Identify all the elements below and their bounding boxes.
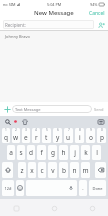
staticText: 8	[79, 128, 81, 132]
staticText: Send	[94, 107, 104, 112]
staticText: 7	[68, 128, 70, 132]
button[interactable]: Add attachment	[2, 104, 12, 114]
button[interactable]: 5	[42, 128, 51, 143]
staticText: f	[40, 148, 43, 157]
button[interactable]: 4	[32, 128, 40, 143]
button[interactable]: v	[48, 162, 57, 178]
button[interactable]: Add contact	[96, 20, 106, 30]
button[interactable]: c	[38, 162, 46, 178]
button[interactable]: h	[59, 145, 68, 160]
staticText: 9	[90, 128, 92, 132]
button[interactable]	[26, 180, 77, 196]
staticText: t	[45, 133, 48, 142]
staticText: l	[96, 148, 98, 157]
button[interactable]: z	[18, 162, 26, 178]
staticText: c	[40, 166, 44, 175]
button[interactable]: l	[92, 145, 101, 160]
button[interactable]: m	[81, 162, 90, 178]
button[interactable]: Emoji	[16, 180, 24, 196]
button[interactable]: Done	[89, 180, 106, 196]
button[interactable]: Backspace	[95, 162, 106, 178]
staticText: 94%	[90, 2, 98, 7]
button[interactable]: a	[7, 145, 15, 160]
staticText: i	[79, 133, 81, 142]
staticText: Text Message	[15, 107, 41, 112]
button[interactable]: 12#	[2, 180, 14, 196]
button[interactable]: Recents	[86, 202, 98, 214]
staticText: no SIM	[3, 2, 16, 7]
staticText: 12#	[4, 186, 12, 191]
button[interactable]: Johnny Bravo	[0, 31, 108, 47]
staticText: .	[82, 185, 84, 192]
staticText: r	[35, 133, 38, 142]
staticText: d	[29, 148, 33, 157]
staticText: m	[82, 166, 89, 175]
button[interactable]: 6	[53, 128, 62, 143]
staticText: Johnny Bravo	[5, 34, 30, 39]
staticText: New Message	[34, 9, 74, 17]
button[interactable]: 0	[97, 128, 106, 143]
staticText: h	[61, 148, 66, 157]
button[interactable]: Stickers	[3, 117, 12, 126]
staticText: z	[20, 166, 24, 175]
staticText: o	[89, 133, 93, 142]
staticText: e	[24, 133, 28, 142]
staticText: 1	[5, 128, 7, 132]
staticText: Cancel	[89, 10, 105, 16]
staticText: 5:04 PM	[47, 2, 62, 7]
staticText: a	[9, 148, 13, 157]
button[interactable]: Home	[48, 202, 60, 214]
button[interactable]: n	[70, 162, 79, 178]
staticText: 6	[57, 128, 59, 132]
button[interactable]: s	[17, 145, 25, 160]
staticText: 5	[46, 128, 48, 132]
staticText: g	[51, 148, 55, 157]
button[interactable]: f	[37, 145, 46, 160]
staticText: s	[19, 148, 23, 157]
button[interactable]: x	[28, 162, 36, 178]
staticText: q	[4, 133, 8, 142]
button[interactable]: Cancel	[86, 8, 108, 18]
button[interactable]: 3	[22, 128, 30, 143]
button[interactable]: 9	[86, 128, 95, 143]
button[interactable]: 8	[75, 128, 84, 143]
button[interactable]: 7	[64, 128, 73, 143]
staticText: 4	[35, 128, 37, 132]
staticText: x	[30, 166, 34, 175]
staticText: v	[51, 166, 55, 175]
staticText: Done	[92, 186, 103, 191]
button[interactable]: Keyboard settings	[96, 117, 105, 126]
staticText: 2	[15, 128, 17, 132]
button[interactable]: g	[48, 145, 57, 160]
staticText: 3	[25, 128, 27, 132]
staticText: b	[62, 166, 66, 175]
staticText: n	[72, 166, 77, 175]
staticText: p	[100, 133, 104, 142]
button[interactable]: .	[79, 180, 87, 196]
button[interactable]: Shift	[2, 162, 13, 178]
button[interactable]: 2	[12, 128, 20, 143]
staticText: y	[56, 133, 60, 142]
staticText: 0	[101, 128, 103, 132]
button[interactable]: Text Message	[12, 105, 92, 113]
button[interactable]: Back	[10, 202, 22, 214]
button[interactable]: j	[70, 145, 79, 160]
staticText: u	[66, 133, 71, 142]
staticText: Recipient:	[5, 22, 26, 28]
staticText: j	[74, 148, 76, 157]
button[interactable]: k	[81, 145, 90, 160]
button[interactable]: b	[59, 162, 68, 178]
staticText: w	[13, 133, 19, 142]
button[interactable]: Send	[92, 105, 106, 114]
staticText: k	[84, 148, 88, 157]
button[interactable]: Recipient:	[3, 20, 94, 29]
button[interactable]: 1	[2, 128, 10, 143]
button[interactable]: Stickers	[20, 117, 29, 126]
button[interactable]: d	[27, 145, 35, 160]
